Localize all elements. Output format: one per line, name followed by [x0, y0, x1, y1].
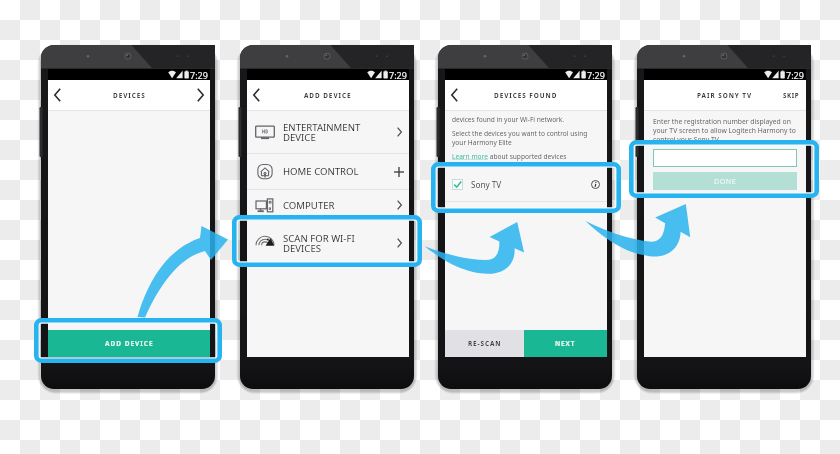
button[interactable]: SKIP — [777, 80, 806, 110]
button[interactable]: Back — [247, 80, 265, 110]
staticText: Learn more — [452, 152, 488, 161]
staticText: 7:29 — [786, 69, 804, 80]
button[interactable]: Back — [445, 80, 463, 110]
staticText: SKIP — [783, 91, 800, 99]
staticText: devices found in your Wi-Fi network. — [452, 115, 565, 124]
staticText: Sony TV — [471, 179, 591, 190]
staticText: about supported devices — [488, 152, 567, 161]
button[interactable]: Sony TV — [445, 168, 607, 201]
button[interactable] — [653, 149, 797, 167]
button[interactable]: Learn more — [452, 152, 567, 161]
staticText: HOME CONTROL — [283, 165, 389, 178]
staticText: COMPUTER — [283, 199, 389, 212]
staticText: DEVICES — [113, 91, 146, 100]
staticText: SCAN FOR WI-FI DEVICES — [283, 232, 389, 254]
staticText: RE-SCAN — [468, 339, 502, 348]
button[interactable]: ADD DEVICE — [48, 330, 210, 357]
button[interactable]: HOME CONTROL — [247, 154, 409, 189]
staticText: DEVICES FOUND — [494, 91, 558, 100]
staticText: Enter the registration number displayed … — [653, 117, 797, 144]
button[interactable]: Forward — [191, 80, 210, 110]
button[interactable]: SCAN FOR WI-FI DEVICES — [247, 221, 409, 265]
button[interactable]: NEXT — [524, 330, 607, 357]
button[interactable]: DONE — [653, 172, 797, 190]
staticText: ADD DEVICE — [304, 91, 352, 100]
button[interactable]: ENTERTAINMENT DEVICE — [247, 111, 409, 153]
button[interactable]: COMPUTER — [247, 190, 409, 220]
button[interactable]: RE-SCAN — [445, 330, 524, 357]
staticText: Select the devices you want to control u… — [452, 129, 601, 147]
staticText: ENTERTAINMENT DEVICE — [283, 121, 389, 143]
staticText: ADD DEVICE — [105, 339, 154, 348]
staticText: NEXT — [555, 339, 576, 348]
staticText: PAIR SONY TV — [697, 91, 753, 100]
button[interactable]: Back — [48, 80, 66, 110]
button[interactable]: Info — [591, 180, 600, 189]
staticText: 7:29 — [190, 69, 208, 80]
staticText: 7:29 — [389, 69, 407, 80]
staticText: DONE — [714, 176, 737, 186]
staticText: 7:29 — [587, 69, 605, 80]
